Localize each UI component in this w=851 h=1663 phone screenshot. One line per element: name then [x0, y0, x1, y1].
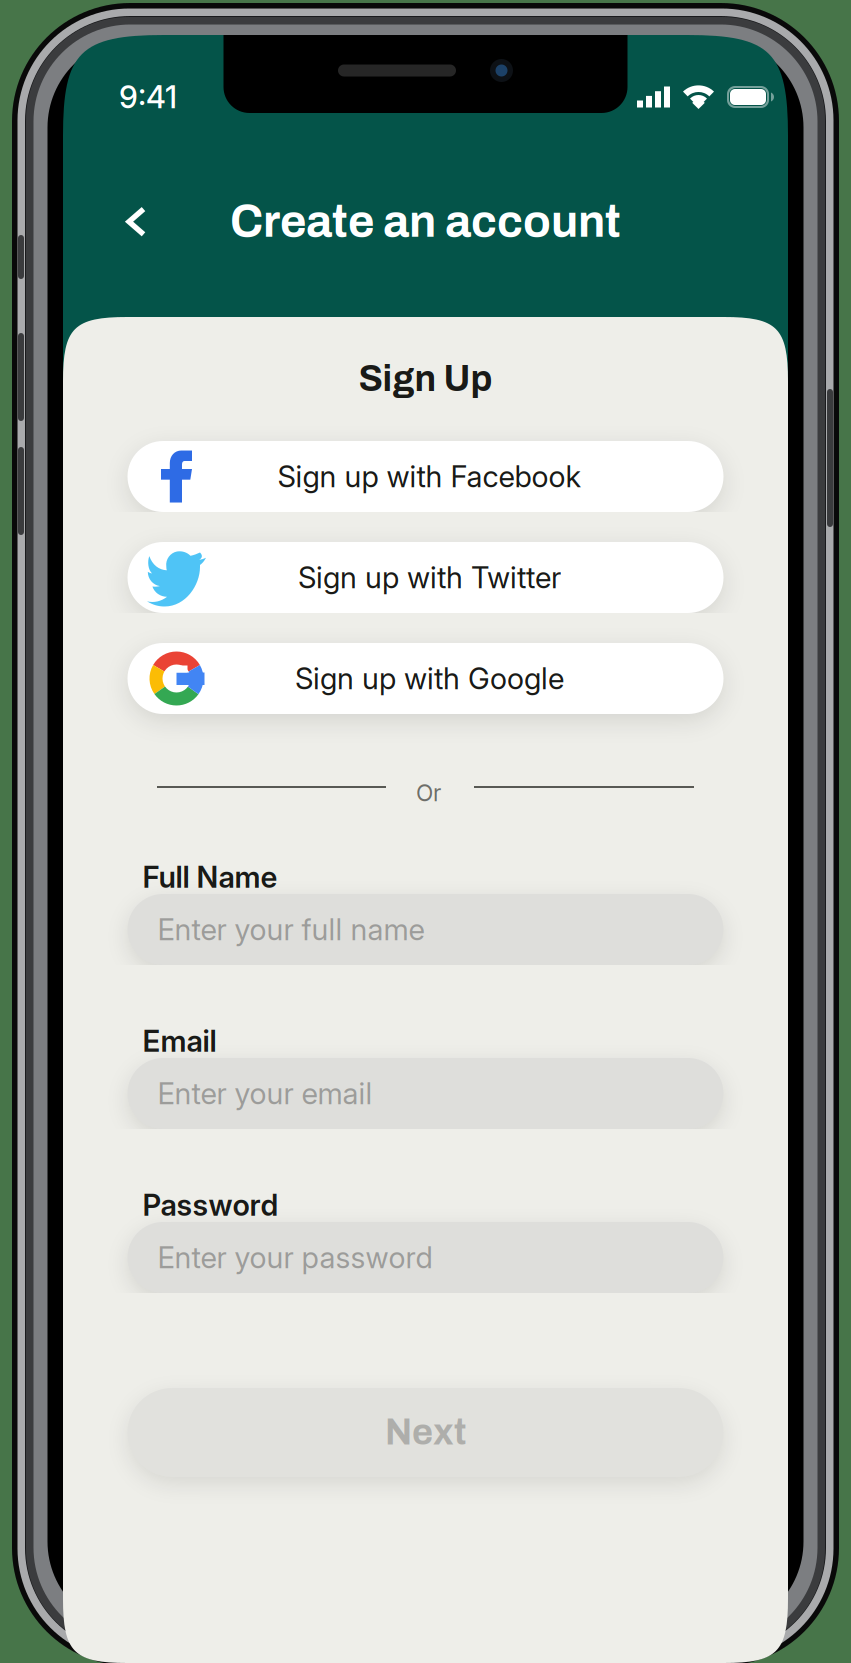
- button[interactable]: Sign up with Google: [127, 643, 723, 714]
- staticText: Enter your full name: [157, 912, 424, 947]
- staticText: Create an account: [230, 197, 621, 246]
- button[interactable]: Sign up with Facebook: [127, 441, 723, 512]
- button[interactable]: Back: [108, 193, 164, 249]
- staticText: Sign up with Facebook: [277, 459, 581, 494]
- button[interactable]: Sign up with Twitter: [127, 542, 723, 613]
- staticText: Password: [142, 1187, 278, 1223]
- staticText: Next: [385, 1413, 466, 1452]
- staticText: Sign up with Google: [295, 661, 564, 696]
- staticText: Sign up with Twitter: [298, 560, 561, 595]
- button[interactable]: Next: [127, 1388, 723, 1477]
- staticText: Full Name: [142, 859, 277, 895]
- staticText: Enter your password: [157, 1240, 432, 1275]
- staticText: 9:41: [119, 78, 177, 115]
- staticText: Sign Up: [358, 359, 492, 399]
- staticText: Enter your email: [157, 1076, 372, 1111]
- staticText: Or: [416, 779, 441, 807]
- staticText: Email: [142, 1023, 216, 1059]
